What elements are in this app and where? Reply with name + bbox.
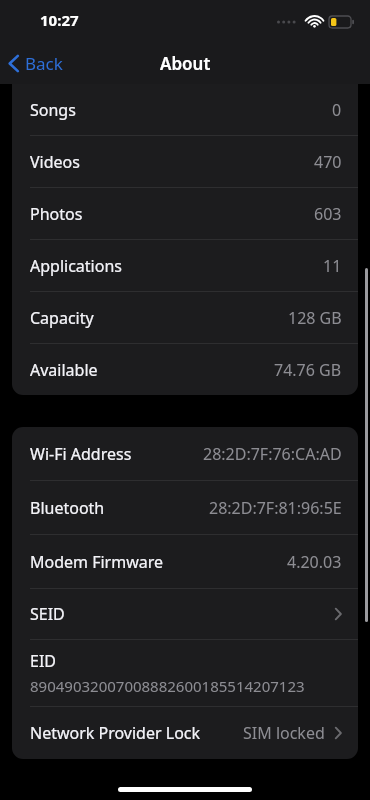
staticText: 74.76 GB	[274, 359, 342, 381]
staticText: SIM locked	[243, 722, 325, 744]
button[interactable]: Network Provider Lock	[12, 707, 358, 759]
staticText: 0	[332, 99, 342, 121]
staticText: Capacity	[30, 307, 94, 329]
button[interactable]: EID	[12, 640, 358, 706]
staticText: Songs	[30, 99, 76, 121]
button[interactable]: Available	[12, 344, 358, 395]
button[interactable]: Modem Firmware	[12, 535, 358, 588]
button[interactable]: Bluetooth	[12, 481, 358, 534]
staticText: Applications	[30, 255, 122, 277]
button[interactable]: Back	[0, 46, 75, 81]
staticText: 470	[314, 151, 342, 173]
staticText: EID	[30, 650, 57, 672]
button[interactable]: Capacity	[12, 292, 358, 343]
staticText: Network Provider Lock	[30, 722, 201, 744]
staticText: Available	[30, 359, 98, 381]
staticText: Modem Firmware	[30, 551, 164, 573]
button[interactable]: Applications	[12, 240, 358, 291]
staticText: Photos	[30, 203, 83, 225]
staticText: 11	[323, 255, 342, 277]
staticText: Wi-Fi Address	[30, 443, 132, 465]
staticText: About	[160, 52, 211, 75]
button[interactable]: Songs	[12, 84, 358, 135]
staticText: 89049032007008882600185514207123	[30, 676, 305, 696]
staticText: 10:27	[40, 10, 79, 30]
staticText: 4.20.03	[287, 551, 342, 573]
button[interactable]: SEID	[12, 589, 358, 639]
staticText: 128 GB	[288, 307, 342, 329]
staticText: 28:2D:7F:81:96:5E	[209, 497, 342, 519]
staticText: SEID	[30, 603, 65, 625]
staticText: Videos	[30, 151, 80, 173]
staticText: Back	[25, 52, 63, 75]
staticText: Bluetooth	[30, 497, 105, 519]
button[interactable]: Photos	[12, 188, 358, 239]
staticText: 603	[314, 203, 342, 225]
staticText: 28:2D:7F:76:CA:AD	[203, 443, 342, 465]
button[interactable]: Wi-Fi Address	[12, 427, 358, 480]
button[interactable]: Videos	[12, 136, 358, 187]
